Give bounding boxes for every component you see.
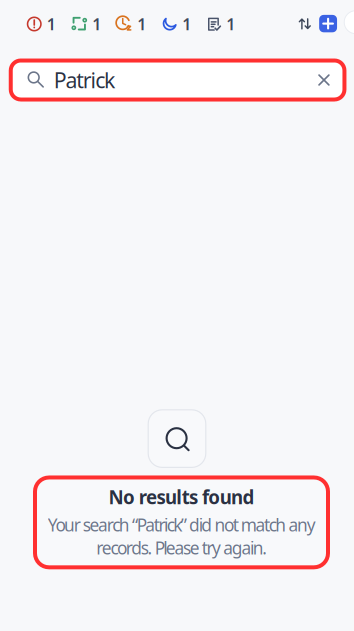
- button[interactable]: Branches, 1: [69, 8, 103, 40]
- staticText: 1: [226, 13, 235, 35]
- button[interactable]: Add: [319, 15, 337, 32]
- staticText: No results found: [108, 484, 254, 509]
- button[interactable]: Sort: [294, 13, 316, 35]
- button[interactable]: Errors, 1: [24, 8, 58, 40]
- staticText: Patrick: [54, 66, 115, 94]
- button[interactable]: Tasks, 1: [204, 8, 237, 40]
- button[interactable]: Snoozed, 1: [114, 8, 148, 40]
- staticText: 1: [47, 13, 56, 35]
- staticText: 1: [182, 13, 191, 35]
- staticText: Your search “Patrick” did not match any …: [48, 513, 315, 559]
- button[interactable]: Patrick: [11, 60, 344, 99]
- button[interactable]: Sleeping, 1: [159, 8, 193, 40]
- staticText: 1: [137, 13, 146, 35]
- button[interactable]: Account: [344, 11, 354, 34]
- staticText: 1: [92, 13, 101, 35]
